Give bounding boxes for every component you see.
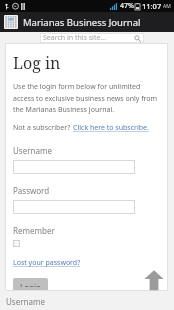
- staticText: Lost your password?: [13, 258, 81, 268]
- button[interactable]: Lost your password?: [13, 258, 81, 268]
- staticText: AM: [163, 3, 171, 10]
- button[interactable]: Remember me checkbox: [13, 240, 20, 247]
- staticText: Log in: [13, 52, 61, 74]
- staticText: Click here to subscribe.: [73, 123, 149, 133]
- staticText: Remember: [13, 225, 55, 236]
- staticText: 47%: [120, 1, 134, 11]
- staticText: Username: [6, 296, 45, 307]
- button[interactable]: Search in this site...: [40, 33, 144, 43]
- staticText: Password: [13, 185, 50, 196]
- staticText: Marianas Business Journal: [23, 16, 141, 29]
- button[interactable]: Click here to subscribe.: [73, 123, 149, 133]
- button[interactable]: [13, 160, 135, 174]
- staticText: 11:07: [142, 1, 162, 11]
- staticText: Login: [20, 282, 41, 287]
- other: App icon: [4, 15, 18, 29]
- button[interactable]: Scroll to top: [144, 269, 164, 291]
- button[interactable]: [13, 200, 135, 214]
- other: Search: [134, 35, 141, 42]
- staticText: Username: [13, 145, 52, 156]
- staticText: Use the login form below for unlimited a…: [13, 82, 160, 114]
- staticText: Search in this site...: [43, 33, 107, 43]
- button[interactable]: App icon: [0, 12, 174, 32]
- staticText: Not a subscriber?: [13, 123, 73, 133]
- button[interactable]: Login: [13, 278, 48, 291]
